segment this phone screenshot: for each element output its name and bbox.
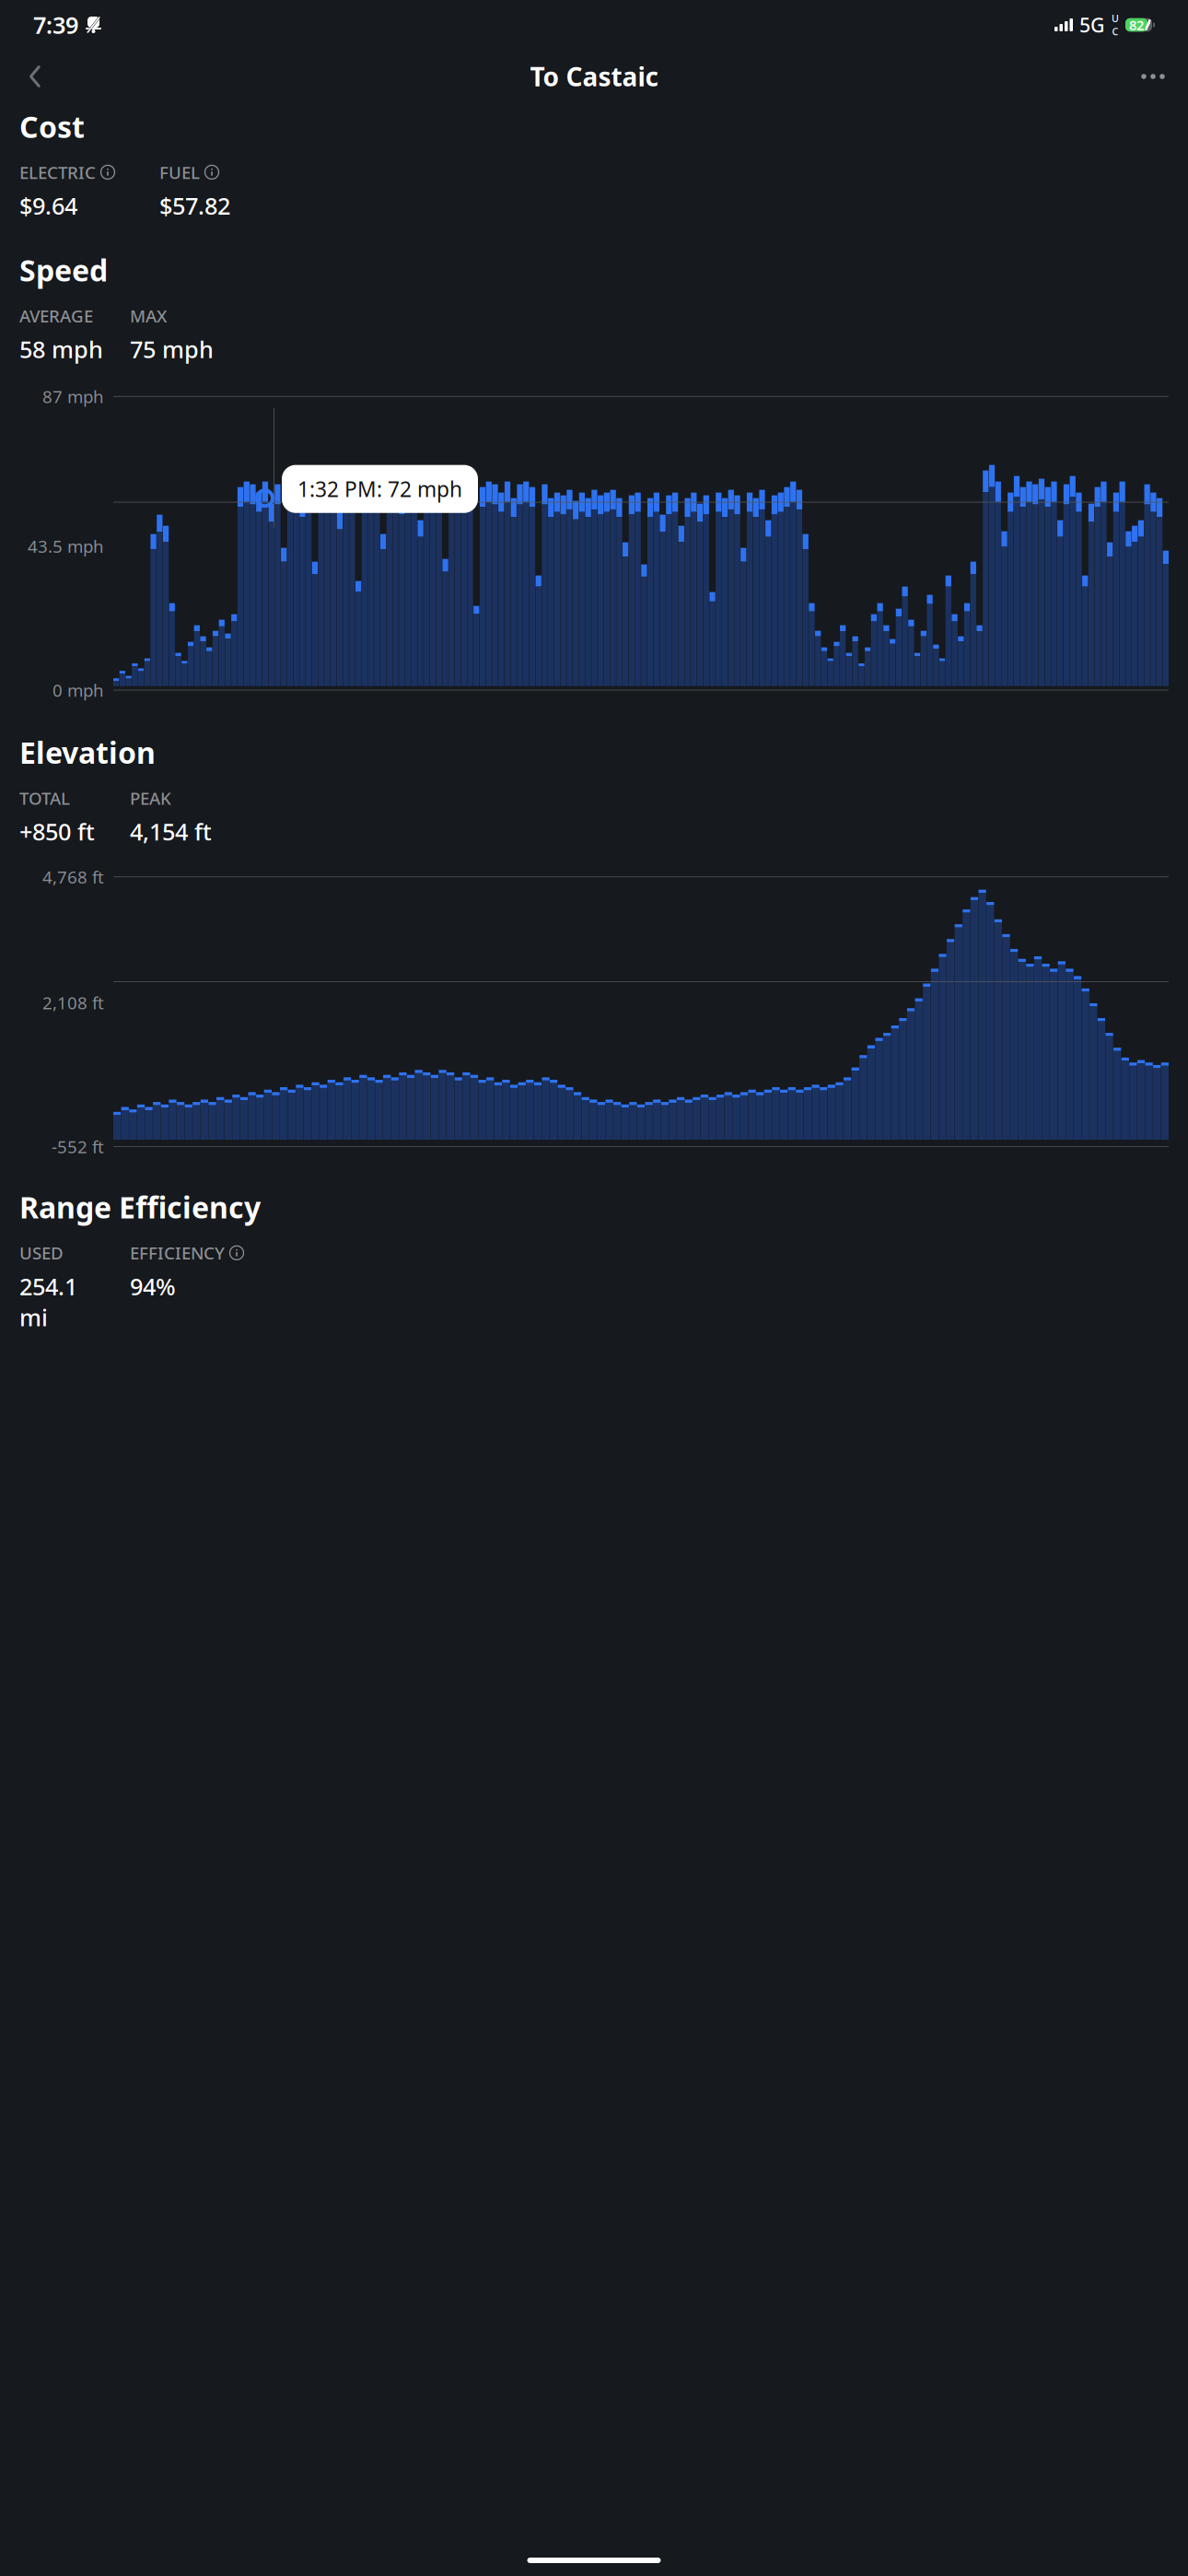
staticText: Elevation bbox=[19, 733, 156, 772]
staticText: ELECTRIC bbox=[19, 161, 96, 184]
staticText: -552 ft bbox=[52, 1135, 104, 1158]
staticText: 75 mph bbox=[130, 334, 214, 365]
staticText: Speed bbox=[19, 251, 108, 290]
staticText: +850 ft bbox=[19, 816, 95, 847]
staticText: U bbox=[1112, 12, 1119, 25]
staticText: 4,154 ft bbox=[130, 816, 212, 847]
staticText: 4,768 ft bbox=[42, 865, 104, 888]
staticText: 58 mph bbox=[19, 334, 103, 365]
staticText: 254.1 mi bbox=[19, 1271, 77, 1333]
staticText: FUEL bbox=[159, 161, 200, 184]
staticText: $57.82 bbox=[159, 190, 230, 221]
staticText: 2,108 ft bbox=[42, 991, 104, 1014]
button[interactable]: More options bbox=[1129, 53, 1177, 100]
staticText: 7:39 bbox=[33, 9, 78, 40]
staticText: To Castaic bbox=[530, 59, 658, 94]
staticText: 43.5 mph bbox=[28, 535, 104, 557]
staticText: PEAK bbox=[130, 787, 171, 810]
staticText: EFFICIENCY bbox=[130, 1241, 225, 1264]
staticText: 82 bbox=[1129, 16, 1144, 34]
staticText: USED bbox=[19, 1241, 64, 1264]
staticText: 94% bbox=[130, 1271, 176, 1302]
staticText: 5G bbox=[1079, 12, 1105, 38]
staticText: $9.64 bbox=[19, 190, 77, 221]
button[interactable]: Back bbox=[11, 53, 59, 100]
staticText: AVERAGE bbox=[19, 304, 93, 327]
staticText: 87 mph bbox=[42, 385, 104, 408]
staticText: 1:32 PM: 72 mph bbox=[297, 475, 462, 503]
staticText: MAX bbox=[130, 304, 167, 327]
staticText: Cost bbox=[19, 107, 85, 146]
staticText: C bbox=[1112, 25, 1118, 38]
staticText: 0 mph bbox=[52, 679, 104, 701]
staticText: Range Efficiency bbox=[19, 1187, 261, 1227]
staticText: TOTAL bbox=[19, 787, 70, 810]
